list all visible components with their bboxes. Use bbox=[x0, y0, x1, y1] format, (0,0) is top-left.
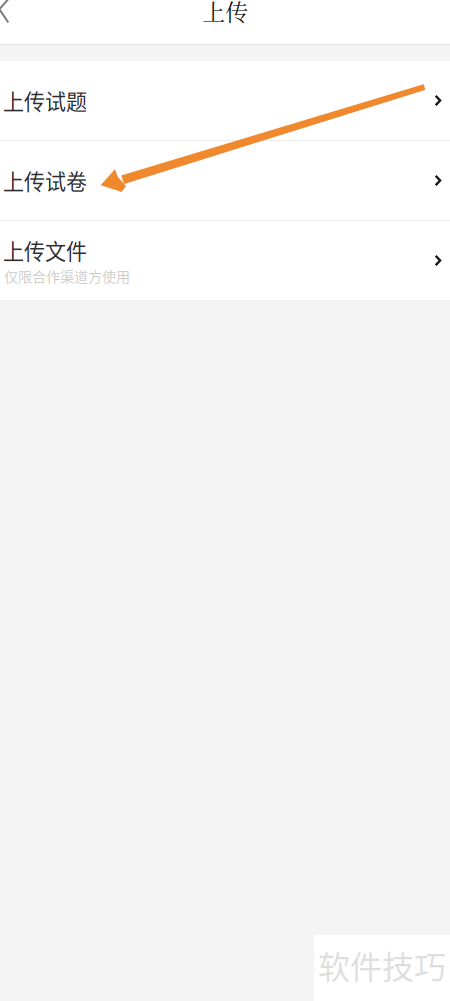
button[interactable]: 上传文件 bbox=[0, 221, 450, 300]
button[interactable]: Back bbox=[0, 0, 29, 25]
staticText: 上传试题 bbox=[3, 85, 87, 116]
staticText: 上传 bbox=[202, 0, 248, 27]
button[interactable]: 上传试题 bbox=[0, 61, 450, 140]
staticText: 仅限合作渠道方使用 bbox=[4, 265, 130, 286]
staticText: 上传文件 bbox=[3, 235, 87, 265]
staticText: 软件技巧 bbox=[318, 942, 446, 988]
staticText: 上传试卷 bbox=[3, 165, 87, 196]
button[interactable]: 上传试卷 bbox=[0, 141, 450, 220]
